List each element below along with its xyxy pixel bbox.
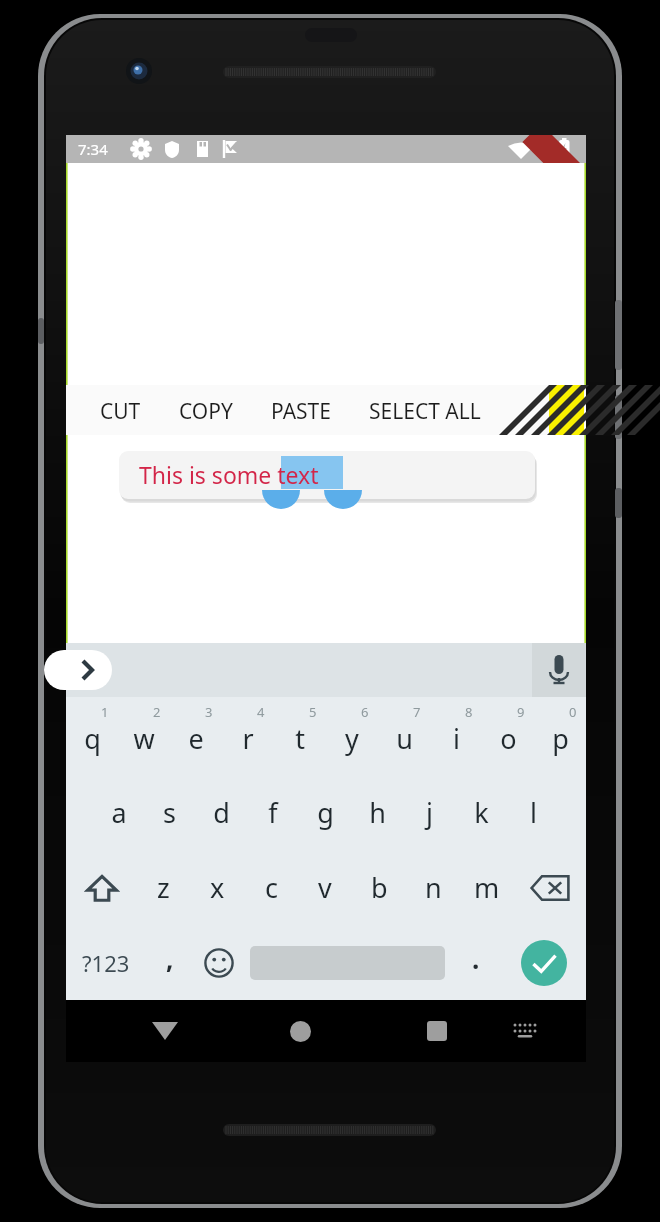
button[interactable]: f [247,775,299,850]
staticText: This is some text [139,459,319,490]
button[interactable]: PASTE [252,385,350,435]
staticText: c [265,869,278,906]
staticText: h [369,794,386,831]
button[interactable]: n [406,850,460,925]
staticText: 0 [569,703,577,721]
button[interactable]: e [170,701,222,775]
button[interactable]: b [352,850,406,925]
staticText: 7:34 [78,139,108,159]
button[interactable]: Backspace [514,850,586,925]
button[interactable]: Switch keyboard [492,1000,557,1062]
button[interactable]: d [195,775,247,850]
button[interactable]: Hide keyboard [133,1000,197,1062]
staticText: u [396,720,413,757]
button[interactable]: ?123 [66,925,146,1000]
button[interactable]: Emoji [194,925,244,1000]
staticText: ?123 [82,948,130,978]
staticText: . [472,941,480,976]
button[interactable]: m [460,850,514,925]
staticText: 4 [257,703,265,721]
button[interactable]: x [190,850,244,925]
button[interactable]: SELECT ALL [350,385,500,435]
button[interactable]: Expand suggestions [44,650,112,690]
button[interactable]: k [455,775,507,850]
button[interactable]: t [274,701,326,775]
staticText: 7 [413,703,421,721]
staticText: f [268,794,278,831]
staticText: n [425,869,442,906]
button[interactable]: z [137,850,190,925]
button[interactable]: CUT [81,385,160,435]
button[interactable]: COPY [160,385,252,435]
staticText: 3 [205,703,213,721]
button[interactable]: , [146,925,194,1000]
staticText: i [453,720,460,757]
button[interactable]: u [378,701,430,775]
staticText: x [210,869,225,906]
staticText: v [318,869,332,906]
button[interactable] [119,451,535,499]
staticText: j [426,794,433,831]
staticText: z [157,869,170,906]
staticText: p [552,720,569,757]
button[interactable]: h [351,775,403,850]
staticText: w [133,720,155,757]
staticText: r [242,720,254,757]
staticText: g [317,794,334,831]
staticText: 2 [153,703,161,721]
button[interactable]: Shift [66,850,137,925]
button[interactable]: i [430,701,482,775]
button[interactable]: p [534,701,586,775]
button[interactable]: Done [521,940,567,986]
button[interactable]: Home [268,1000,333,1062]
staticText: , [166,941,174,976]
staticText: o [500,720,517,757]
staticText: 6 [361,703,369,721]
staticText: k [474,794,489,831]
staticText: 1 [101,703,109,721]
button[interactable]: v [298,850,352,925]
staticText: q [84,720,101,757]
button[interactable]: Recent apps [404,1000,469,1062]
staticText: a [111,794,127,831]
button[interactable]: q [66,701,118,775]
button[interactable]: g [299,775,351,850]
staticText: b [371,869,388,906]
staticText: l [530,794,537,831]
staticText: COPY [179,397,233,423]
button[interactable]: s [144,775,195,850]
staticText: t [295,720,305,757]
button[interactable]: y [326,701,378,775]
staticText: PASTE [271,397,331,423]
staticText: e [188,720,204,757]
button[interactable]: j [403,775,455,850]
button[interactable]: r [222,701,274,775]
staticText: CUT [100,397,141,423]
button[interactable]: Voice input [532,643,586,697]
staticText: s [163,794,176,831]
staticText: 5 [309,703,317,721]
button[interactable]: l [507,775,559,850]
button[interactable]: a [93,775,144,850]
staticText: m [474,869,500,906]
button[interactable]: c [244,850,298,925]
staticText: d [213,794,230,831]
staticText: SELECT ALL [369,397,481,423]
button[interactable]: w [118,701,170,775]
button[interactable]: . [451,925,501,1000]
button[interactable]: o [482,701,534,775]
staticText: 8 [465,703,473,721]
staticText: y [345,720,359,757]
staticText: 9 [517,703,525,721]
